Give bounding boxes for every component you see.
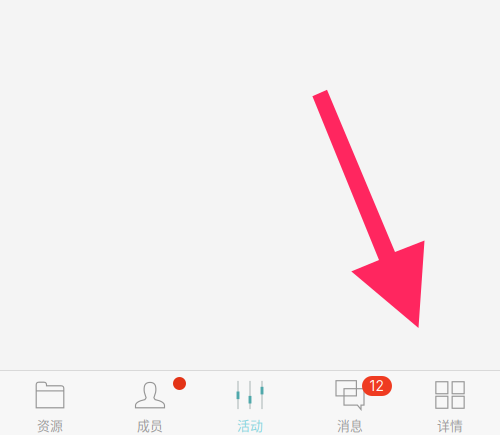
staticText: 活动 <box>237 416 263 434</box>
button[interactable]: 详情 <box>400 371 500 435</box>
button[interactable]: 活动 <box>200 371 300 435</box>
button[interactable]: 成员 <box>100 371 200 435</box>
staticText: 成员 <box>137 416 163 434</box>
button[interactable]: 资源 <box>0 371 100 435</box>
button[interactable]: 消息 <box>300 371 400 435</box>
staticText: 消息 <box>337 416 363 434</box>
staticText: 资源 <box>37 416 63 434</box>
staticText: 详情 <box>437 416 463 434</box>
staticText: 12 <box>369 377 384 394</box>
